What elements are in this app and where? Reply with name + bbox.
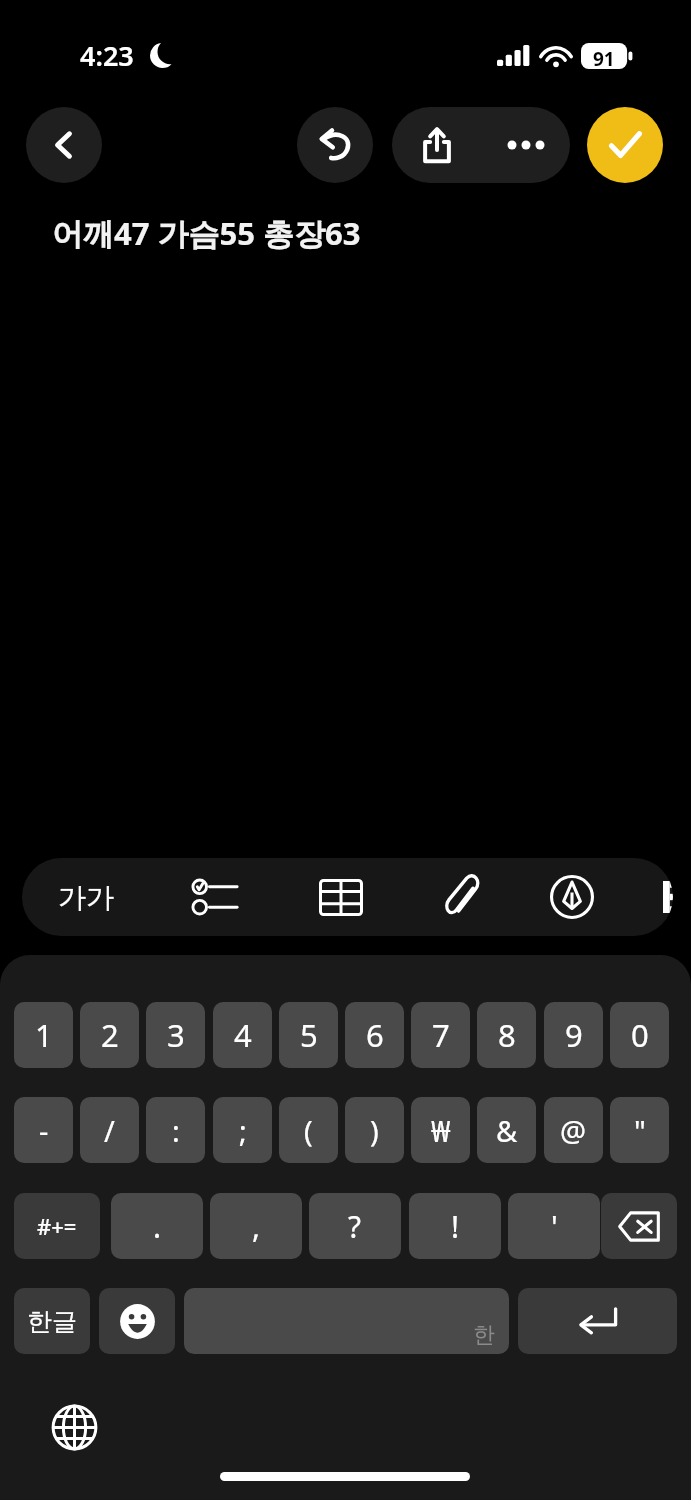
button[interactable]: 한글	[14, 1288, 90, 1354]
button[interactable]: 9	[544, 1002, 603, 1068]
button[interactable]: )	[345, 1097, 404, 1163]
staticText: #+=	[37, 1211, 77, 1241]
button[interactable]: 4	[213, 1002, 272, 1068]
staticText: /	[104, 1111, 115, 1150]
staticText: ?	[348, 1206, 362, 1247]
button[interactable]: :	[146, 1097, 205, 1163]
button[interactable]: Markup	[516, 858, 628, 936]
staticText: 한	[473, 1321, 495, 1349]
staticText: -	[39, 1111, 49, 1150]
staticText: !	[451, 1206, 460, 1247]
button[interactable]: '	[508, 1193, 600, 1259]
staticText: 8	[498, 1014, 516, 1056]
button[interactable]: 0	[610, 1002, 669, 1068]
button[interactable]: Undo	[297, 107, 373, 183]
button[interactable]: More options	[481, 107, 570, 183]
staticText: 어깨47 가슴55 총장63	[52, 212, 361, 254]
button[interactable]: 7	[411, 1002, 470, 1068]
button[interactable]: ,	[210, 1193, 302, 1259]
button[interactable]: Attach	[406, 858, 518, 936]
staticText: 4	[234, 1014, 252, 1056]
button[interactable]: 6	[345, 1002, 404, 1068]
button[interactable]: ₩	[411, 1097, 470, 1163]
staticText: 3	[167, 1014, 185, 1056]
button[interactable]: .	[111, 1193, 203, 1259]
staticText: 7	[432, 1014, 450, 1056]
staticText: ,	[252, 1206, 261, 1247]
button[interactable]: &	[477, 1097, 536, 1163]
button[interactable]: ;	[213, 1097, 272, 1163]
button[interactable]	[656, 858, 673, 936]
staticText: ₩	[431, 1111, 451, 1150]
button[interactable]: 가가	[30, 858, 142, 936]
staticText: 6	[366, 1014, 384, 1056]
button[interactable]: Done	[587, 107, 663, 183]
button[interactable]: (	[279, 1097, 338, 1163]
staticText: ;	[239, 1111, 247, 1150]
button[interactable]: 2	[80, 1002, 139, 1068]
button[interactable]: "	[610, 1097, 669, 1163]
button[interactable]: Backspace	[601, 1193, 677, 1259]
button[interactable]: 5	[279, 1002, 338, 1068]
button[interactable]: 1	[14, 1002, 73, 1068]
staticText: 2	[101, 1014, 119, 1056]
button[interactable]: -	[14, 1097, 73, 1163]
staticText: )	[370, 1111, 379, 1150]
button[interactable]: Next keyboard	[40, 1393, 108, 1461]
button[interactable]: Table	[285, 858, 397, 936]
button[interactable]: Space	[184, 1288, 509, 1354]
staticText: 한글	[27, 1306, 77, 1337]
staticText: :	[172, 1111, 180, 1150]
button[interactable]: Share	[392, 107, 481, 183]
button[interactable]: Back	[26, 107, 102, 183]
button[interactable]: Emoji	[99, 1288, 175, 1354]
staticText: '	[551, 1206, 558, 1247]
staticText: 91	[593, 46, 615, 72]
button[interactable]: !	[409, 1193, 501, 1259]
staticText: (	[304, 1111, 313, 1150]
button[interactable]: 8	[477, 1002, 536, 1068]
staticText: 4:23	[80, 37, 134, 74]
staticText: "	[634, 1111, 646, 1150]
staticText: 9	[565, 1014, 583, 1056]
button[interactable]: 3	[146, 1002, 205, 1068]
staticText: 1	[35, 1014, 53, 1056]
staticText: 가가	[58, 880, 114, 915]
button[interactable]: Return	[518, 1288, 677, 1354]
staticText: 0	[631, 1014, 649, 1056]
staticText: &	[496, 1111, 518, 1150]
button[interactable]: #+=	[14, 1193, 100, 1259]
button[interactable]: Checklist	[160, 858, 272, 936]
button[interactable]: ?	[309, 1193, 401, 1259]
staticText: 5	[300, 1014, 318, 1056]
button[interactable]: @	[544, 1097, 603, 1163]
staticText: .	[153, 1206, 162, 1247]
staticText: @	[560, 1111, 587, 1150]
button[interactable]: /	[80, 1097, 139, 1163]
